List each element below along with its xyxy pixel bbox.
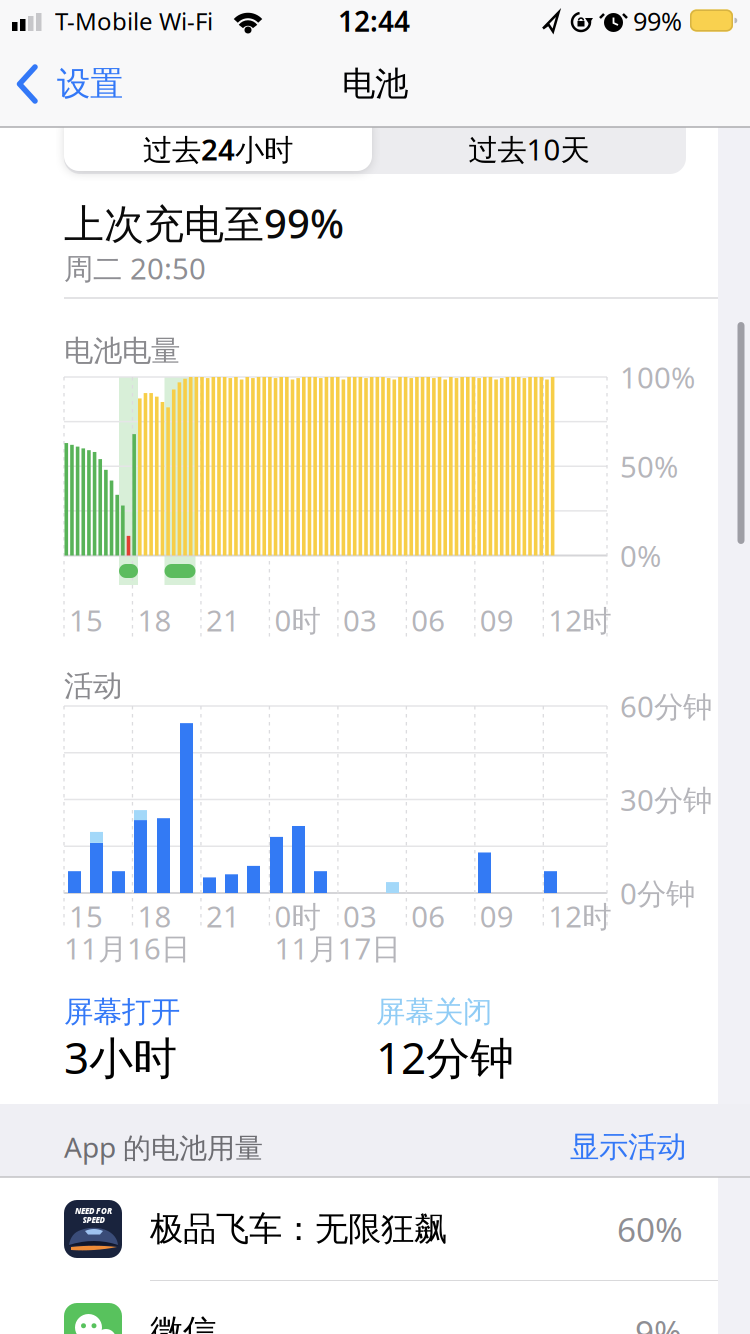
staticText: 06	[411, 896, 445, 935]
staticText: 60%	[617, 1207, 683, 1251]
staticText: 屏幕打开	[64, 994, 180, 1030]
staticText: 0分钟	[620, 873, 695, 912]
staticText: 18	[137, 600, 171, 639]
button[interactable]: 设置	[14, 54, 154, 114]
staticText: 极品飞车：无限狂飙	[150, 1208, 447, 1249]
button[interactable]: 微信	[0, 1281, 718, 1334]
staticText: NEED FOR	[75, 1206, 112, 1216]
button[interactable]: 过去24小时	[64, 111, 372, 171]
staticText: 屏幕关闭	[376, 994, 492, 1030]
staticText: 09	[480, 896, 514, 935]
staticText: 15	[69, 896, 103, 935]
staticText: 11月16日	[64, 928, 190, 967]
staticText: 显示活动	[570, 1129, 686, 1165]
staticText: 21	[206, 600, 240, 639]
staticText: 过去24小时	[143, 129, 293, 168]
staticText: 18	[137, 896, 171, 935]
staticText: 30分钟	[620, 780, 712, 819]
staticText: 0%	[620, 536, 661, 575]
staticText: 电池电量	[64, 333, 180, 369]
staticText: T-Mobile Wi-Fi	[55, 5, 213, 37]
staticText: 0时	[274, 896, 320, 935]
staticText: 06	[411, 600, 445, 639]
staticText: 03	[343, 896, 377, 935]
staticText: App 的电池用量	[64, 1128, 263, 1166]
staticText: 12时	[548, 600, 611, 639]
staticText: 3小时	[64, 1028, 177, 1086]
staticText: 微信	[150, 1311, 216, 1334]
staticText: 50%	[620, 447, 678, 486]
staticText: SPEED	[82, 1215, 104, 1225]
staticText: 09	[480, 600, 514, 639]
staticText: 03	[343, 600, 377, 639]
staticText: 9%	[635, 1310, 682, 1334]
button[interactable]: NEED FOR	[0, 1178, 718, 1281]
staticText: 周二 20:50	[64, 248, 206, 287]
staticText: 60分钟	[620, 686, 712, 725]
staticText: 12时	[548, 896, 611, 935]
button[interactable]: 显示活动	[0, 0, 750, 1334]
button[interactable]: 过去10天	[389, 119, 669, 179]
staticText: 上次充电至99%	[64, 196, 344, 249]
staticText: 设置	[57, 63, 123, 104]
staticText: 过去10天	[468, 129, 589, 168]
staticText: 100%	[620, 357, 695, 396]
staticText: 21	[206, 896, 240, 935]
staticText: 12:44	[338, 2, 410, 40]
staticText: 11月17日	[274, 928, 400, 967]
staticText: 电池	[342, 63, 408, 104]
staticText: 99%	[633, 4, 682, 38]
staticText: 0时	[274, 600, 320, 639]
staticText: 活动	[64, 668, 122, 704]
staticText: 15	[69, 600, 103, 639]
staticText: 12分钟	[376, 1028, 514, 1086]
